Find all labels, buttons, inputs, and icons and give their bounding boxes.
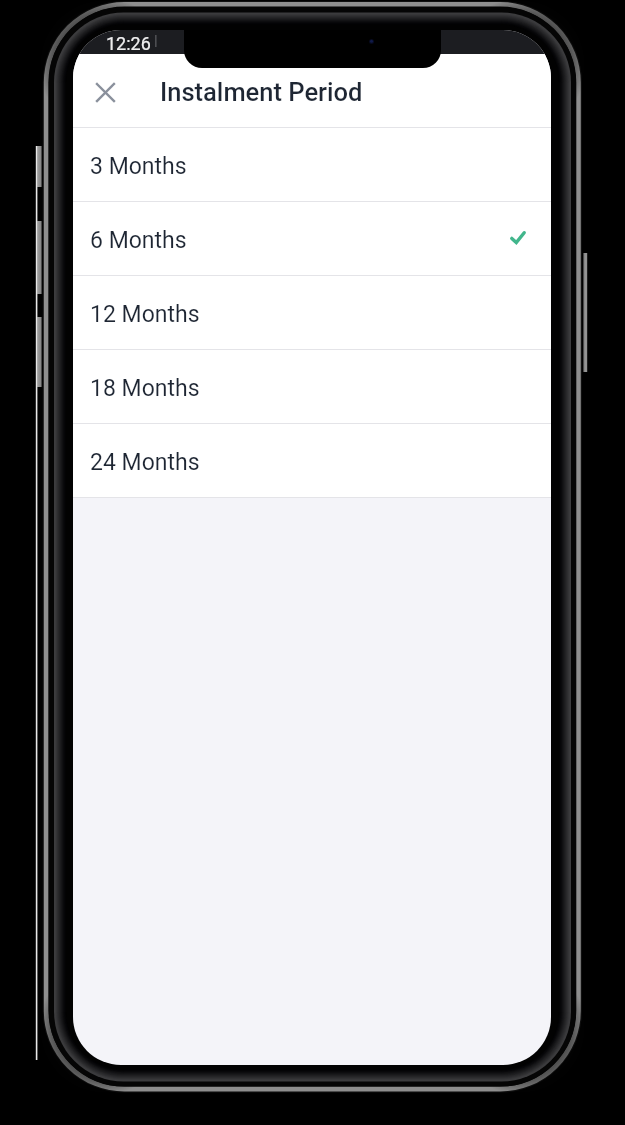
staticText: Instalment Period: [160, 77, 363, 107]
button[interactable]: 18 Months: [73, 350, 551, 423]
button[interactable]: Close: [81, 68, 130, 117]
staticText: 12 Months: [90, 301, 200, 328]
button[interactable]: 3 Months: [73, 128, 551, 201]
button[interactable]: 12 Months: [73, 276, 551, 349]
button[interactable]: 24 Months: [73, 424, 551, 497]
staticText: 3 Months: [90, 153, 187, 180]
staticText: 12:26: [106, 33, 151, 54]
staticText: 6 Months: [90, 227, 187, 254]
staticText: 24 Months: [90, 449, 200, 476]
button[interactable]: 6 Months: [73, 202, 551, 275]
staticText: 18 Months: [90, 375, 200, 402]
